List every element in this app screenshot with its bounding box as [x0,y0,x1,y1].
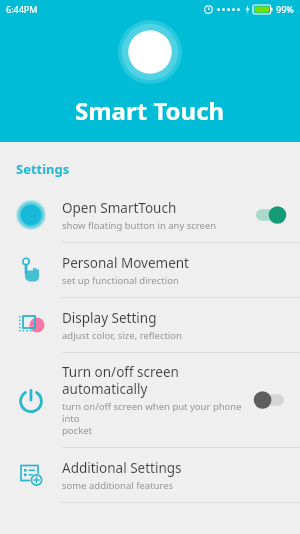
staticText: set up functional direction [62,274,179,287]
staticText: Settings [16,160,70,178]
staticText: Turn on/off screen automatically [62,363,179,398]
staticText: some additional features [62,479,174,492]
button[interactable]: Turn on/off screen automatically [0,353,300,447]
staticText: Smart Touch [75,94,225,127]
button[interactable]: Toggle off [252,389,288,411]
staticText: Display Setting [62,309,157,327]
staticText: Personal Movement [62,254,189,272]
button[interactable]: Display Setting [0,298,300,352]
button[interactable]: Personal Movement [0,243,300,297]
button[interactable]: Additional Settings [0,448,300,502]
staticText: 6:44PM [6,3,38,15]
staticText: 99% [276,3,294,15]
staticText: show floating button in any screen [62,219,217,232]
staticText: Additional Settings [62,459,182,477]
staticText: turn on/off screen when put your phone i… [62,400,246,437]
button[interactable]: Open SmartTouch [0,188,300,242]
staticText: Open SmartTouch [62,199,177,217]
staticText: adjust color, size, reflection [62,329,182,342]
button[interactable]: Toggle on [252,204,288,226]
